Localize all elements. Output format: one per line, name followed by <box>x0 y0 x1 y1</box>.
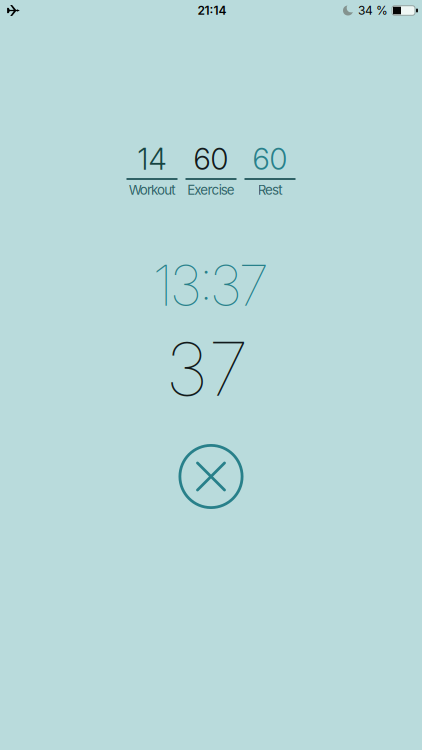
staticText: 60 <box>252 142 287 176</box>
staticText: 13:37 <box>152 252 269 319</box>
staticText: Rest <box>258 182 282 198</box>
staticText: 60 <box>193 142 228 176</box>
staticText: 34 % <box>358 3 388 18</box>
staticText: 37 <box>165 326 248 412</box>
staticText: Workout <box>129 182 175 198</box>
staticText: Exercise <box>187 182 235 198</box>
staticText: 14 <box>137 142 166 176</box>
staticText: 21:14 <box>197 3 226 18</box>
button[interactable]: Stop workout <box>178 444 243 509</box>
